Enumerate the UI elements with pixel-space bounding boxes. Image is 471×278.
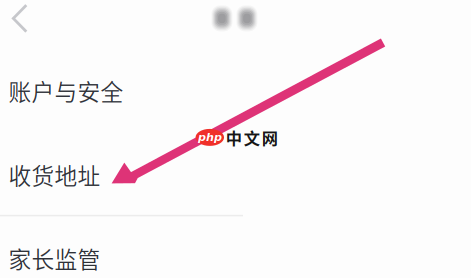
staticText: 家长监管: [8, 242, 100, 274]
staticText: 账户与安全: [8, 74, 123, 107]
staticText: 中文网: [226, 126, 278, 149]
button[interactable]: 账户与安全: [0, 48, 471, 132]
button[interactable]: Back: [0, 0, 41, 40]
button[interactable]: 家长监管: [0, 216, 471, 278]
staticText: 收货地址: [8, 158, 100, 191]
button[interactable]: 收货地址: [0, 132, 471, 216]
staticText: php: [198, 130, 222, 143]
